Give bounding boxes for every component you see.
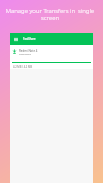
staticText: Downloading — [19, 53, 31, 56]
button[interactable]: Redmi Note 4 — [10, 45, 93, 69]
button[interactable]: Open navigation menu — [12, 36, 19, 43]
staticText: FastShare — [23, 37, 36, 41]
staticText: Redmi Note 4 — [19, 49, 38, 53]
staticText: 4.2 MB / 4.2 MB — [13, 65, 33, 69]
staticText: Manage your Transfers in single screen — [0, 7, 100, 21]
